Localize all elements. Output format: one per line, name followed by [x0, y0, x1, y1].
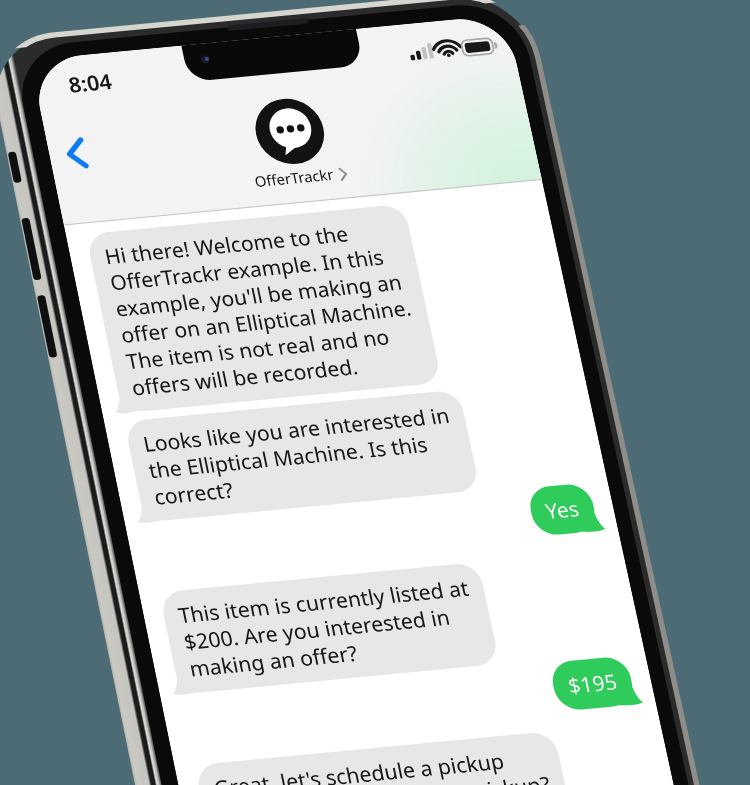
button[interactable] [0, 0, 750, 785]
